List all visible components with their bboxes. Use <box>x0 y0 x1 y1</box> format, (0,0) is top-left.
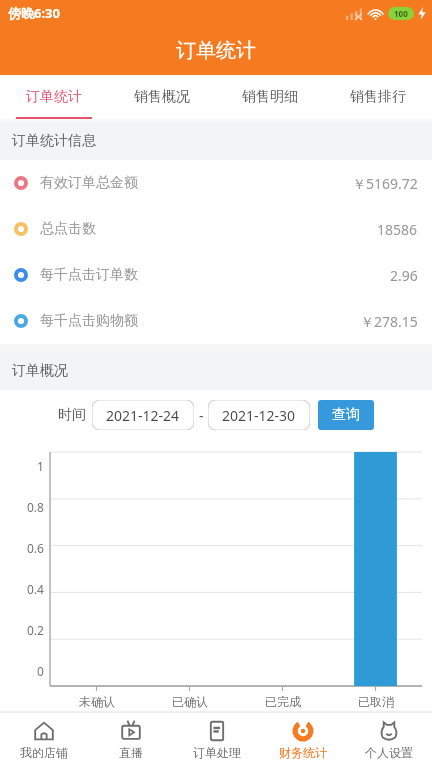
staticText: 查询 <box>332 406 360 424</box>
staticText: 直播 <box>119 745 143 760</box>
staticText: 有效订单总金额 <box>40 174 138 192</box>
staticText: 订单处理 <box>193 745 241 760</box>
button[interactable]: 2021-12-24 <box>92 400 194 430</box>
staticText: 18586 <box>377 220 418 239</box>
staticText: 时间 <box>58 406 86 424</box>
staticText: 0.4 <box>27 581 44 597</box>
button[interactable]: 财务统计 <box>260 712 346 768</box>
staticText: - <box>199 406 204 425</box>
staticText: 订单统计 <box>176 38 256 63</box>
staticText: 财务统计 <box>279 745 327 760</box>
staticText: ￥278.15 <box>360 312 418 331</box>
staticText: 总点击数 <box>40 220 96 238</box>
staticText: 已完成 <box>265 694 301 709</box>
staticText: 每千点击购物额 <box>40 312 138 330</box>
staticText: 订单统计信息 <box>12 132 96 150</box>
staticText: 2021-12-30 <box>222 406 296 425</box>
staticText: 100 <box>394 8 408 19</box>
staticText: 已确认 <box>172 694 208 709</box>
button[interactable]: 订单处理 <box>174 712 260 768</box>
staticText: 2.96 <box>390 266 418 285</box>
button[interactable]: 直播 <box>87 712 174 768</box>
staticText: 个人设置 <box>365 745 413 760</box>
staticText: ￥5169.72 <box>352 174 418 193</box>
button[interactable]: 查询 <box>318 400 374 430</box>
button[interactable]: 销售概况 <box>108 75 216 119</box>
staticText: 1 <box>37 458 44 474</box>
button[interactable]: 总点击数 <box>0 206 432 252</box>
staticText: 0 <box>37 663 44 679</box>
staticText: 每千点击订单数 <box>40 266 138 284</box>
button[interactable]: 每千点击购物额 <box>0 298 432 344</box>
staticText: 未确认 <box>79 694 115 709</box>
staticText: 销售明细 <box>242 88 298 106</box>
button[interactable]: 2021-12-30 <box>208 400 310 430</box>
staticText: 订单概况 <box>12 362 68 380</box>
button[interactable]: 每千点击订单数 <box>0 252 432 298</box>
staticText: 我的店铺 <box>20 745 68 760</box>
staticText: 已取消 <box>358 694 394 709</box>
button[interactable]: 个人设置 <box>346 712 432 768</box>
staticText: 2021-12-24 <box>106 406 180 425</box>
staticText: 0.6 <box>27 540 44 556</box>
staticText: 0.2 <box>27 622 44 638</box>
button[interactable]: 销售明细 <box>216 75 324 119</box>
staticText: 0.8 <box>27 499 44 515</box>
button[interactable]: 我的店铺 <box>0 712 87 768</box>
staticText: 傍晚6:30 <box>8 4 60 22</box>
button[interactable]: 有效订单总金额 <box>0 160 432 206</box>
staticText: 销售概况 <box>134 88 190 106</box>
button[interactable]: 订单统计 <box>0 75 108 119</box>
staticText: 订单统计 <box>26 88 82 106</box>
button[interactable]: 销售排行 <box>324 75 432 119</box>
staticText: 销售排行 <box>350 88 406 106</box>
